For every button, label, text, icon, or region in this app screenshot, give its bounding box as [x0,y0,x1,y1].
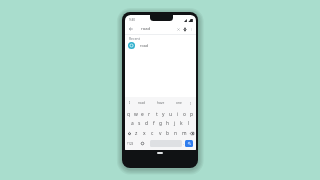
button[interactable]: s [136,119,143,128]
button[interactable]: u [167,109,174,119]
button[interactable]: Back [128,26,134,32]
staticText: e [141,111,144,118]
staticText: h [166,120,170,127]
staticText: w [134,111,138,118]
staticText: s [138,120,141,127]
staticText: p [190,111,194,118]
staticText: ?123 [127,142,134,146]
button[interactable]: road [134,97,149,109]
staticText: x [143,130,146,137]
staticText: v [159,130,162,137]
staticText: . [183,141,184,146]
staticText: 9:30 [129,18,135,22]
button[interactable]: Search [185,140,193,147]
button[interactable]: I [125,97,134,109]
button[interactable]: b [164,128,172,138]
button[interactable]: t [153,109,160,119]
button[interactable]: Voice search [182,26,188,32]
button[interactable]: Backspace [188,128,196,138]
button[interactable]: p [188,109,195,119]
staticText: k [180,120,183,127]
staticText: I [129,101,131,105]
button[interactable]: k [178,119,185,128]
button[interactable]: j [171,119,178,128]
staticText: road [138,101,145,105]
staticText: o [183,111,186,118]
button[interactable]: n [172,128,180,138]
button[interactable]: road [125,41,196,50]
staticText: one [176,101,182,105]
button[interactable]: d [143,119,150,128]
button[interactable]: c [148,128,156,138]
button[interactable]: a [129,119,136,128]
staticText: Recent [129,36,140,41]
staticText: r [148,111,151,118]
staticText: m [182,130,187,137]
staticText: t [156,111,158,118]
button[interactable]: v [156,128,164,138]
staticText: have [157,101,165,105]
staticText: y [162,111,165,118]
staticText: u [169,111,173,118]
button[interactable]: Clear [175,26,181,32]
staticText: z [135,130,138,137]
staticText: a [131,120,134,127]
button[interactable]: w [132,109,139,119]
staticText: b [166,130,170,137]
button[interactable]: q [126,109,132,119]
button[interactable]: m [180,128,188,138]
button[interactable]: y [160,109,167,119]
button[interactable]: one [172,97,185,109]
button[interactable]: h [164,119,171,128]
button[interactable]: l [185,119,192,128]
button[interactable]: Shift [125,128,133,138]
button[interactable]: i [174,109,181,119]
button[interactable]: . [182,140,185,147]
button[interactable]: x [140,128,148,138]
staticText: j [174,120,176,127]
staticText: n [174,130,178,137]
button[interactable]: o [181,109,188,119]
button[interactable]: z [133,128,140,138]
staticText: road [141,26,151,32]
button[interactable]: e [139,109,146,119]
button[interactable]: More suggestions [185,97,196,109]
staticText: c [151,130,154,137]
button[interactable]: ?123 [126,140,135,147]
staticText: i [177,111,179,118]
staticText: d [145,120,149,127]
staticText: q [127,111,131,118]
staticText: f [153,120,155,127]
button[interactable]: have [149,97,172,109]
button[interactable]: More options [189,27,194,32]
button[interactable]: f [150,119,157,128]
staticText: road [140,43,149,48]
button[interactable]: r [146,109,153,119]
staticText: l [188,120,190,127]
button[interactable]: Emoji [135,140,150,147]
button[interactable]: g [157,119,164,128]
staticText: g [159,120,163,127]
